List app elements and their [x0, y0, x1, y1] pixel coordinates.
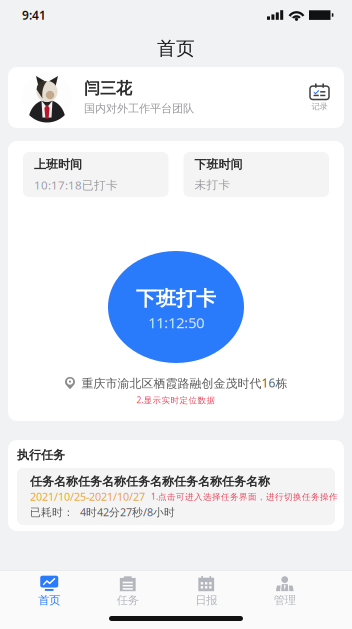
staticText: 未打卡 — [194, 178, 230, 192]
staticText: 2021/10/25-2021/10/27 — [30, 489, 145, 504]
staticText: 2.显示实时定位数据 — [136, 394, 215, 406]
staticText: 管理 — [274, 593, 296, 607]
staticText: 国内对外工作平台团队 — [84, 101, 194, 115]
button[interactable]: 日报 — [167, 575, 245, 608]
staticText: 9:41 — [22, 7, 46, 23]
staticText: 任务 — [117, 593, 139, 607]
staticText: 任务名称任务名称任务名称任务名称任务名称 — [30, 474, 270, 489]
button[interactable]: 任务名称任务名称任务名称任务名称任务名称 — [17, 468, 335, 525]
button[interactable]: 首页 — [10, 575, 88, 608]
staticText: 下班打卡 — [136, 286, 216, 311]
staticText: 闫三花 — [84, 79, 132, 98]
staticText: 首页 — [157, 37, 195, 60]
staticText: 执行任务 — [17, 448, 65, 462]
button[interactable]: 任务 — [88, 575, 167, 608]
staticText: 已耗时： 4时42分27秒/8小时 — [30, 505, 175, 519]
staticText: 重庆市渝北区栖霞路融创金茂时代16栋 — [81, 375, 287, 391]
staticText: 10:17:18已打卡 — [34, 177, 118, 193]
staticText: 11:12:50 — [148, 312, 204, 333]
staticText: 上班时间 — [34, 157, 82, 172]
staticText: 日报 — [195, 593, 217, 607]
button[interactable]: 下班打卡 — [108, 251, 244, 363]
button[interactable]: 管理 — [245, 575, 324, 608]
staticText: 首页 — [38, 593, 60, 607]
staticText: 记录 — [311, 101, 327, 112]
button[interactable]: 闫三花 — [8, 67, 344, 128]
staticText: 下班时间 — [194, 157, 242, 172]
staticText: 1.点击可进入选择任务界面，进行切换任务操作 — [151, 491, 338, 502]
